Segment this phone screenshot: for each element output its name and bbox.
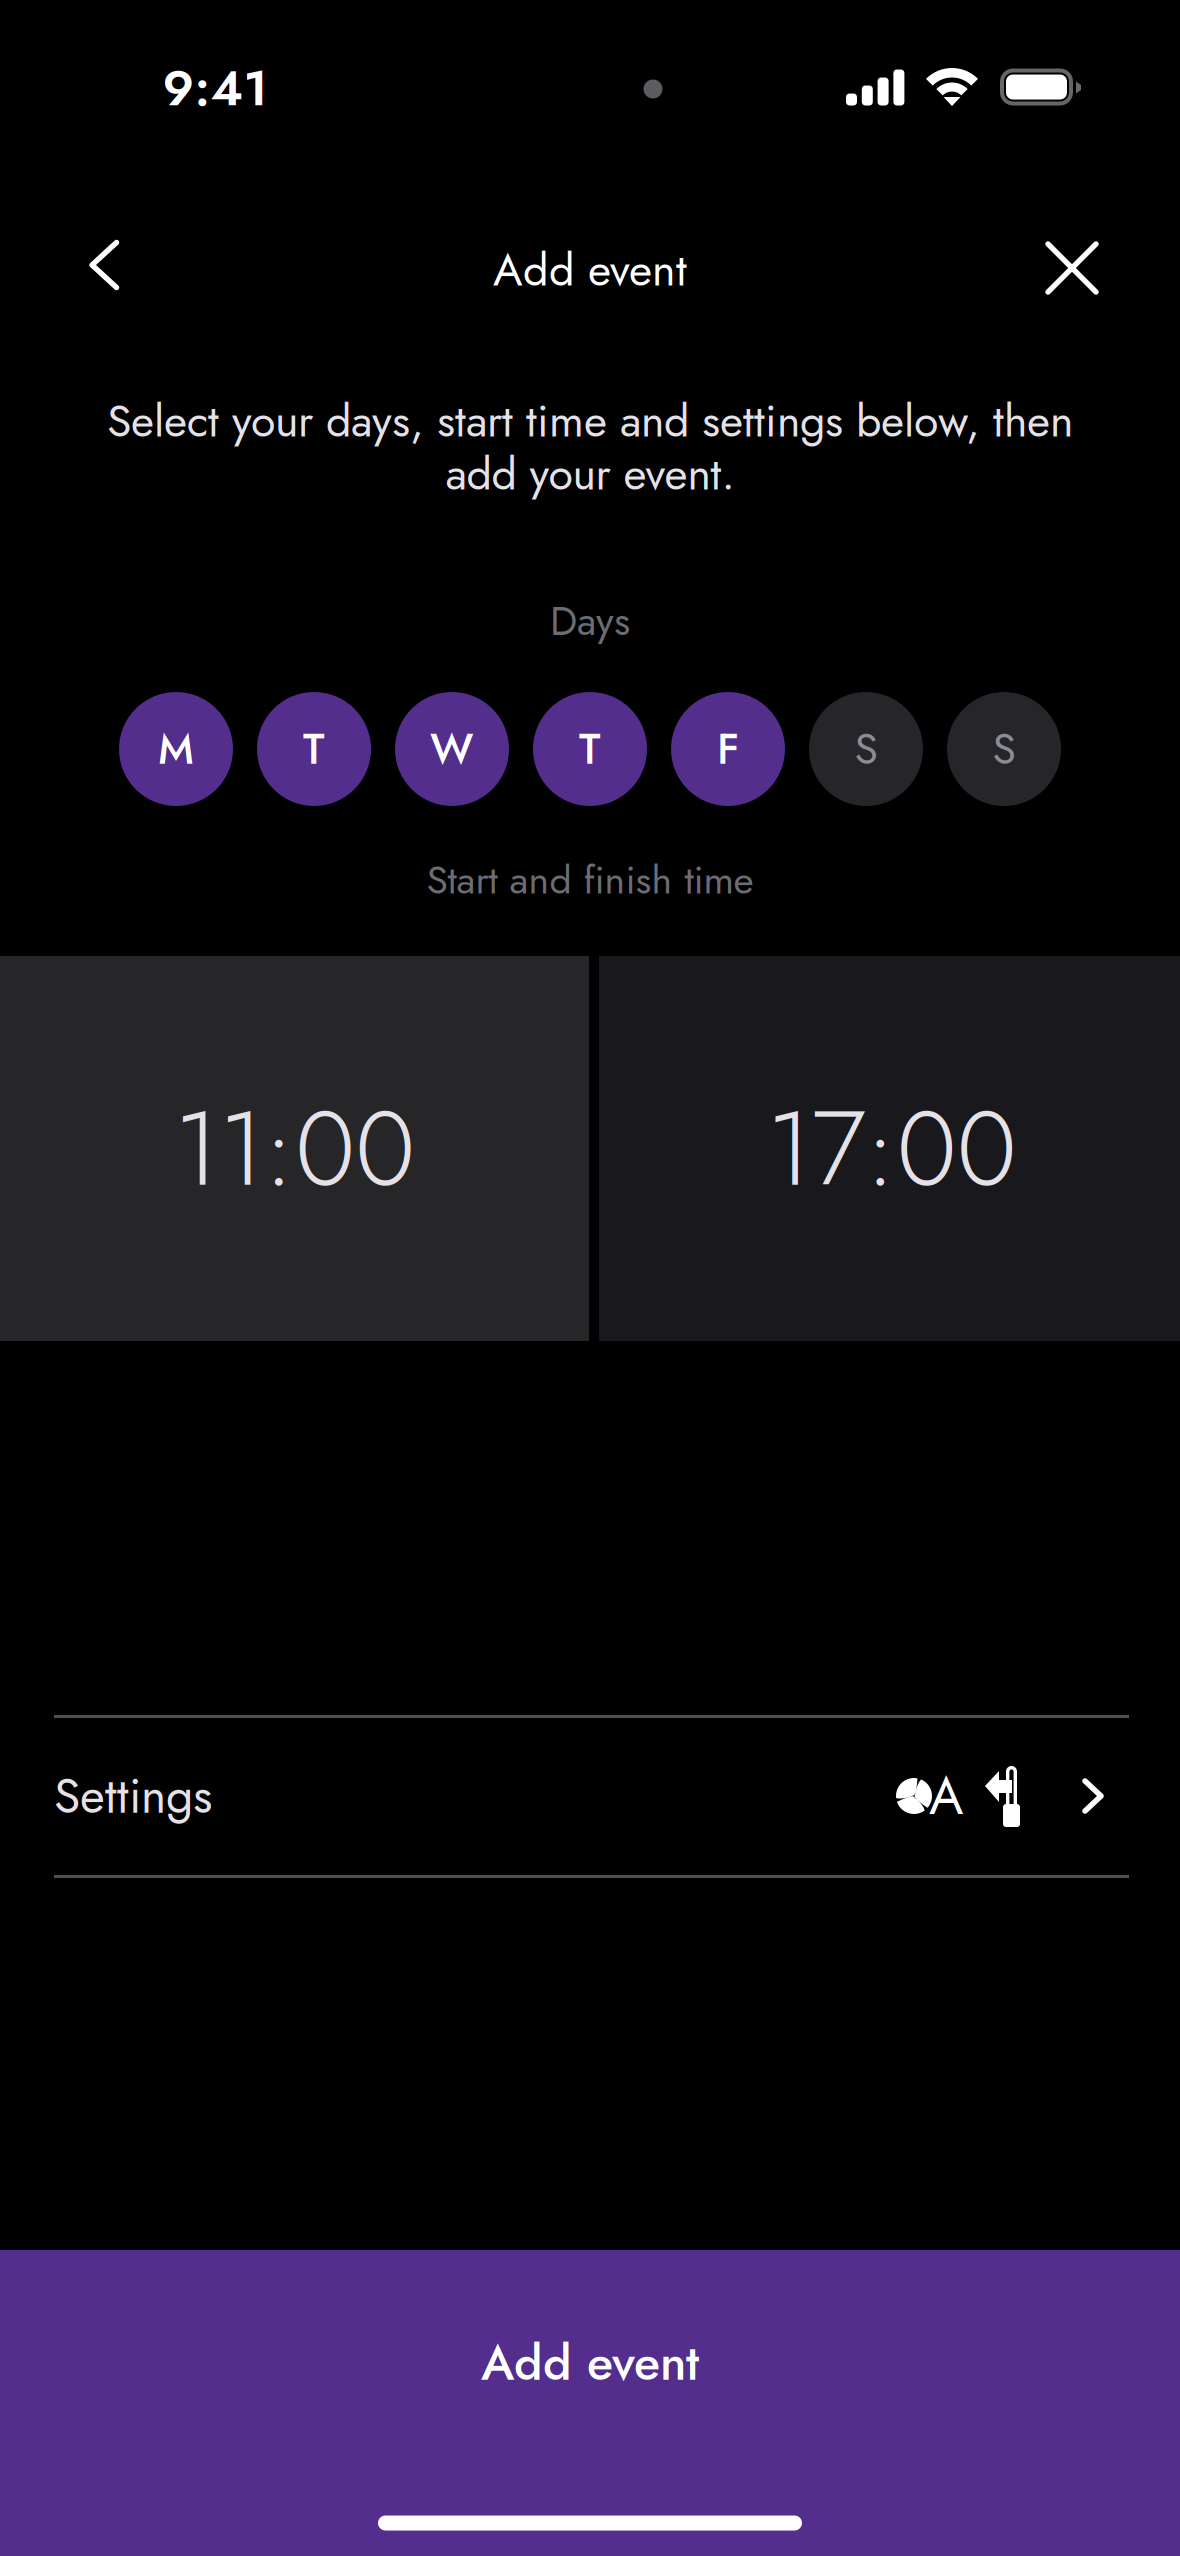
button[interactable]: Settings <box>0 1715 1180 1878</box>
staticText: Select your days, start time and setting… <box>107 389 1073 453</box>
staticText: S <box>854 718 877 780</box>
staticText: W <box>430 718 474 780</box>
staticText: T <box>579 718 601 780</box>
staticText: A <box>929 1758 963 1833</box>
staticText: add your event. <box>445 442 734 506</box>
button[interactable]: M <box>119 692 233 806</box>
staticText: Settings <box>54 1761 212 1831</box>
button[interactable]: Close <box>1006 202 1138 334</box>
staticText: Days <box>550 592 630 650</box>
staticText: 17:00 <box>766 1073 1016 1224</box>
button[interactable]: T <box>257 692 371 806</box>
staticText: T <box>303 718 325 780</box>
staticText: Add event <box>481 2328 699 2398</box>
staticText: S <box>992 718 1015 780</box>
button[interactable]: 17:00 <box>599 956 1180 1341</box>
button[interactable]: Back <box>38 199 170 331</box>
button[interactable]: F <box>671 692 785 806</box>
staticText: 9:41 <box>162 52 267 124</box>
staticText: 11:00 <box>174 1073 415 1224</box>
button[interactable]: S <box>809 692 923 806</box>
button[interactable]: 11:00 <box>0 956 589 1341</box>
button[interactable]: T <box>533 692 647 806</box>
staticText: Start and finish time <box>426 852 753 908</box>
button[interactable]: S <box>947 692 1061 806</box>
staticText: M <box>158 718 194 780</box>
staticText: Add event <box>493 238 687 302</box>
button[interactable]: Add event <box>0 2250 1180 2556</box>
staticText: F <box>717 718 739 780</box>
button[interactable]: W <box>395 692 509 806</box>
